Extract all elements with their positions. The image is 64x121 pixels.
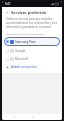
staticText: Microsoft	[15, 57, 29, 61]
button[interactable]: Google	[4, 47, 60, 55]
button[interactable]: Home	[27, 114, 38, 120]
button[interactable]: Añadir un servicio	[4, 63, 60, 71]
staticText: Añadir un servicio	[11, 65, 37, 69]
staticText: 9:41	[5, 2, 11, 6]
staticText: Google	[15, 49, 26, 53]
button[interactable]: Samsung Pass	[4, 37, 60, 46]
staticText: Utiliza un servicio para que complete au…	[6, 17, 58, 29]
button[interactable]: Back	[5, 10, 10, 15]
button[interactable]: Recents	[9, 114, 20, 120]
staticText: Samsung Pass	[15, 40, 36, 44]
staticText: Servicio preferido	[11, 10, 47, 15]
staticText: SERVICIO DE AUTOCOMPLETADO	[6, 32, 44, 35]
button[interactable]: Microsoft	[4, 55, 60, 63]
